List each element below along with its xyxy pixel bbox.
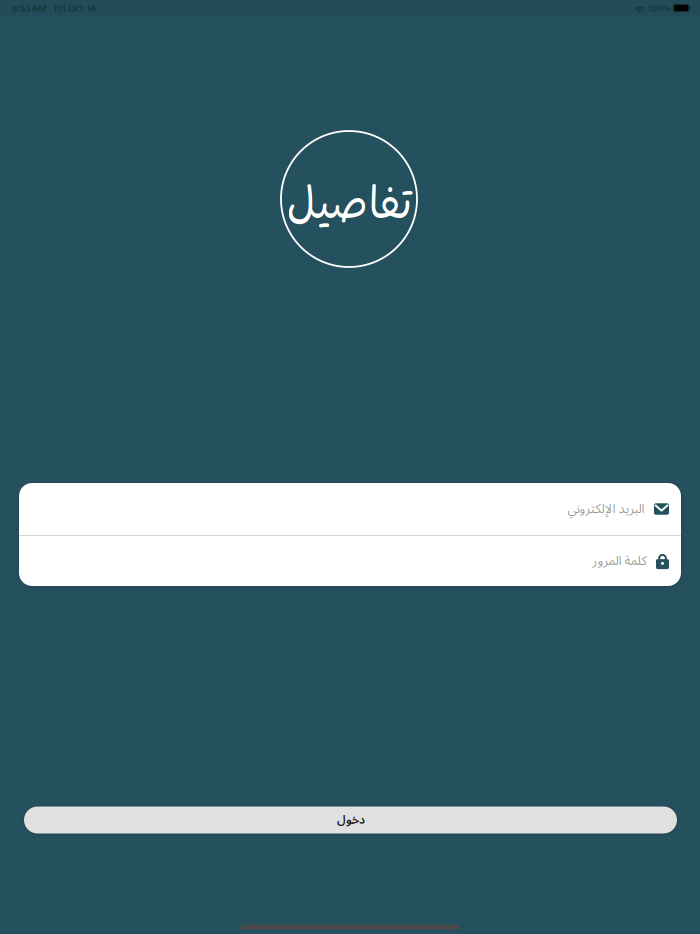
staticText: البريد الإلكتروني — [567, 496, 644, 522]
staticText: كلمة المرور — [592, 548, 646, 574]
staticText: تفاصيل — [286, 170, 412, 242]
staticText: 8:53 AM — [12, 2, 47, 14]
button[interactable]: البريد الإلكتروني — [19, 483, 681, 535]
staticText: Fri Oct 16 — [54, 2, 96, 14]
button[interactable]: دخول — [24, 806, 677, 833]
button[interactable]: كلمة المرور — [19, 536, 681, 586]
staticText: دخول — [336, 807, 364, 833]
staticText: 100% — [648, 2, 671, 14]
